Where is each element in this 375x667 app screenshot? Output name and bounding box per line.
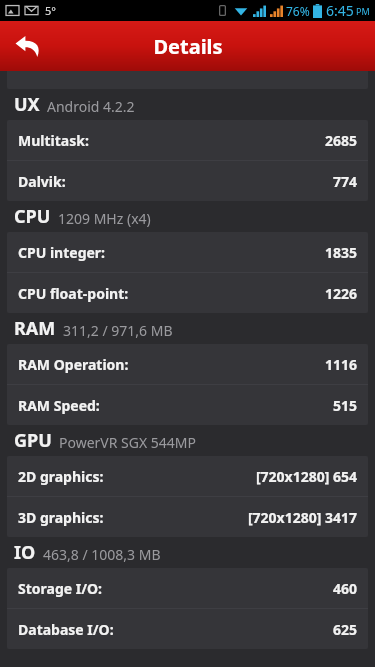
staticText: 1226 bbox=[324, 284, 357, 303]
staticText: 311,2 / 971,6 MB bbox=[63, 321, 173, 340]
staticText: GPU bbox=[14, 428, 52, 453]
button[interactable]: CPU float-point: bbox=[7, 273, 368, 313]
staticText: Storage I/O: bbox=[18, 579, 103, 598]
staticText: RAM bbox=[14, 316, 56, 341]
button[interactable]: Dalvik: bbox=[7, 161, 368, 201]
staticText: 1835 bbox=[324, 243, 357, 262]
button[interactable]: CPU integer: bbox=[7, 232, 368, 272]
staticText: 625 bbox=[332, 620, 357, 639]
button[interactable]: 3D graphics: bbox=[7, 497, 368, 537]
button[interactable]: RAM Operation: bbox=[7, 344, 368, 384]
button[interactable]: Storage I/O: bbox=[7, 568, 368, 608]
staticText: 2D graphics: bbox=[18, 467, 104, 486]
staticText: IO bbox=[14, 540, 36, 565]
button[interactable]: RAM Speed: bbox=[7, 385, 368, 425]
staticText: 3D graphics: bbox=[18, 508, 104, 527]
staticText: 1209 MHz (x4) bbox=[58, 209, 151, 228]
staticText: CPU float-point: bbox=[18, 284, 129, 303]
staticText: 1116 bbox=[324, 355, 357, 374]
staticText: 5° bbox=[45, 3, 56, 18]
staticText: 76% bbox=[286, 3, 310, 19]
staticText: CPU integer: bbox=[18, 243, 106, 262]
staticText: RAM Operation: bbox=[18, 355, 129, 374]
staticText: RAM Speed: bbox=[18, 396, 100, 415]
staticText: 463,8 / 1008,3 MB bbox=[43, 545, 161, 564]
staticText: PM bbox=[356, 5, 370, 17]
staticText: Dalvik: bbox=[18, 172, 66, 191]
staticText: Multitask: bbox=[18, 131, 89, 150]
staticText: CPU bbox=[14, 204, 51, 229]
button[interactable]: 2D graphics: bbox=[7, 456, 368, 496]
staticText: Database I/O: bbox=[18, 620, 114, 639]
staticText: 460 bbox=[332, 579, 357, 598]
staticText: Android 4.2.2 bbox=[47, 97, 135, 116]
button[interactable]: Database I/O: bbox=[7, 609, 368, 649]
staticText: [720x1280] 654 bbox=[255, 467, 357, 486]
staticText: 515 bbox=[332, 396, 357, 415]
button[interactable]: Back bbox=[8, 26, 48, 66]
staticText: 2685 bbox=[324, 131, 357, 150]
staticText: PowerVR SGX 544MP bbox=[59, 433, 197, 452]
staticText: 6:45 bbox=[326, 1, 354, 20]
staticText: 774 bbox=[332, 172, 357, 191]
staticText: Details bbox=[153, 33, 223, 60]
staticText: [720x1280] 3417 bbox=[247, 508, 357, 527]
button[interactable]: Multitask: bbox=[7, 120, 368, 160]
staticText: UX bbox=[14, 92, 40, 117]
